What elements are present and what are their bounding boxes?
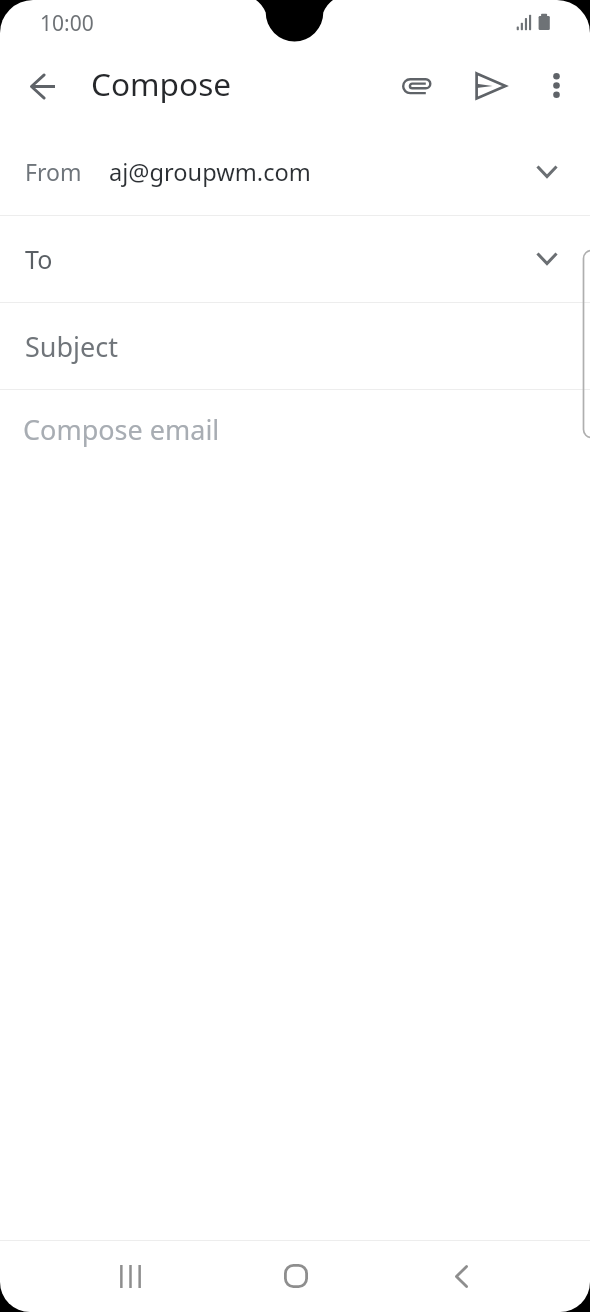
button[interactable]: Compose email body xyxy=(0,390,590,1230)
button[interactable]: Show more xyxy=(525,237,569,281)
staticText: Subject xyxy=(25,328,119,365)
button[interactable]: Home xyxy=(255,1235,337,1312)
staticText: aj@groupwm.com xyxy=(109,156,311,188)
button[interactable]: More options xyxy=(530,60,582,112)
button[interactable]: From xyxy=(0,128,590,215)
button[interactable]: Subject xyxy=(0,303,590,389)
button[interactable]: Attach file xyxy=(391,60,443,112)
button[interactable]: Send xyxy=(465,60,517,112)
staticText: Compose xyxy=(91,62,232,105)
button[interactable]: To xyxy=(0,216,590,302)
button[interactable]: Back xyxy=(419,1235,501,1312)
staticText: 10:00 xyxy=(40,9,94,38)
button[interactable]: Recent apps xyxy=(89,1235,171,1312)
staticText: Compose email xyxy=(23,411,220,448)
button[interactable]: Show more xyxy=(525,150,569,194)
button[interactable]: Navigate up xyxy=(19,62,67,110)
staticText: From xyxy=(25,156,82,187)
staticText: To xyxy=(25,242,53,276)
